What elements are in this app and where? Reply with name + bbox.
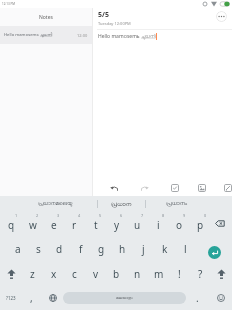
button[interactable] — [211, 261, 232, 286]
button[interactable]: മലയാളം — [63, 292, 186, 304]
button[interactable] — [97, 180, 119, 196]
staticText: പ്രധാനം — [166, 201, 188, 207]
staticText: ചുധനി — [141, 34, 156, 39]
button[interactable]: m — [148, 261, 169, 286]
button[interactable] — [0, 261, 22, 286]
button[interactable] — [119, 180, 149, 196]
button[interactable]: w — [22, 211, 43, 236]
staticText: 8 — [162, 213, 165, 218]
staticText: 7 — [141, 213, 144, 218]
button[interactable]: c — [64, 261, 85, 286]
staticText: Tuesday 12:00PM — [98, 21, 131, 26]
staticText: q — [8, 218, 15, 232]
staticText: 2 — [36, 213, 39, 218]
staticText: e — [51, 218, 57, 232]
button[interactable]: a — [7, 236, 28, 261]
staticText: Notes — [39, 14, 53, 21]
button[interactable]: k — [154, 236, 175, 261]
staticText: r — [72, 218, 77, 232]
staticText: k — [162, 242, 168, 256]
button[interactable]: s — [28, 236, 49, 261]
staticText: s — [36, 242, 41, 256]
button[interactable]: . — [186, 286, 209, 310]
button[interactable]: n — [127, 261, 148, 286]
staticText: Hello mamഠsemь — [4, 32, 40, 38]
staticText: , — [30, 291, 33, 305]
staticText: x — [51, 267, 57, 281]
button[interactable]: പ്രധാന — [98, 196, 145, 211]
button[interactable]: i — [148, 211, 169, 236]
staticText: w — [29, 218, 37, 232]
staticText: a — [15, 242, 21, 256]
staticText: t — [94, 218, 98, 232]
staticText: d — [56, 242, 63, 256]
staticText: ! — [178, 267, 181, 281]
staticText: 9 — [183, 213, 186, 218]
button[interactable]: q — [0, 211, 22, 236]
button[interactable]: d — [49, 236, 70, 261]
staticText: . — [196, 291, 199, 305]
button[interactable]: ?123 — [0, 286, 21, 310]
staticText: 5/5 — [98, 10, 109, 20]
staticText: u — [134, 218, 141, 232]
button[interactable]: ! — [169, 261, 190, 286]
button[interactable]: o — [169, 211, 190, 236]
staticText: m — [154, 267, 164, 281]
staticText: 0 — [204, 213, 207, 218]
button[interactable] — [203, 236, 232, 261]
staticText: 12:13 PM — [2, 2, 15, 6]
button[interactable]: g — [91, 236, 112, 261]
staticText: ചുധനി — [40, 33, 53, 37]
button[interactable]: f — [70, 236, 91, 261]
button[interactable]: p — [190, 211, 211, 236]
staticText: y — [114, 218, 120, 232]
button[interactable]: j — [133, 236, 154, 261]
button[interactable]: t — [85, 211, 106, 236]
button[interactable]: u — [127, 211, 148, 236]
button[interactable]: പ്രധാനമലെയു — [0, 196, 97, 211]
staticText: പ്രധാന — [111, 201, 132, 207]
staticText: i — [157, 218, 160, 232]
button[interactable]: , — [21, 286, 42, 310]
button[interactable]: Hello mamഠsemь — [0, 26, 92, 44]
staticText: 12:00 — [77, 33, 88, 38]
button[interactable]: z — [22, 261, 43, 286]
button[interactable]: x — [43, 261, 64, 286]
button[interactable]: ? — [190, 261, 211, 286]
staticText: 3 — [57, 213, 60, 218]
staticText: 1 — [15, 213, 18, 218]
button[interactable] — [179, 180, 206, 196]
staticText: ?123 — [6, 295, 16, 301]
staticText: z — [30, 267, 35, 281]
staticText: b — [113, 267, 120, 281]
button[interactable]: h — [112, 236, 133, 261]
button[interactable]: b — [106, 261, 127, 286]
button[interactable]: l — [175, 236, 196, 261]
button[interactable]: e — [43, 211, 64, 236]
button[interactable]: v — [85, 261, 106, 286]
button[interactable] — [209, 286, 232, 310]
staticText: l — [184, 242, 187, 256]
staticText: o — [176, 218, 183, 232]
staticText: ? — [198, 267, 203, 281]
button[interactable] — [149, 180, 179, 196]
staticText: g — [98, 242, 105, 256]
button[interactable] — [216, 11, 227, 22]
staticText: 5 — [99, 213, 102, 218]
staticText: n — [134, 267, 141, 281]
staticText: മലയാളം — [116, 296, 133, 300]
staticText: പ്രധാനമലെയു — [38, 201, 73, 206]
button[interactable]: y — [106, 211, 127, 236]
staticText: c — [72, 267, 77, 281]
button[interactable]: r — [64, 211, 85, 236]
staticText: v — [93, 267, 99, 281]
button[interactable] — [206, 180, 232, 196]
staticText: p — [197, 218, 204, 232]
staticText: 4 — [78, 213, 81, 218]
staticText: j — [142, 242, 145, 256]
button[interactable] — [42, 286, 63, 310]
button[interactable] — [211, 211, 232, 236]
button[interactable]: പ്രധാനം — [146, 196, 232, 211]
staticText: 6 — [120, 213, 123, 218]
staticText: h — [119, 242, 126, 256]
